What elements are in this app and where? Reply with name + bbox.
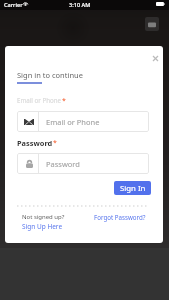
staticText: * [62,96,66,106]
button[interactable]: Close [149,52,162,65]
button[interactable]: Not signed up? [22,213,65,231]
staticText: Not signed up? [22,213,65,221]
staticText: Password [17,138,53,148]
button[interactable]: Sign In [114,181,151,195]
staticText: 3:10 AM [69,1,91,9]
button[interactable]: Email or Phone [17,111,149,132]
staticText: * [53,138,57,148]
button[interactable]: Forgot Password? [94,213,146,221]
staticText: Email or Phone [17,96,62,104]
staticText: Sign In [120,183,146,194]
staticText: Email or Phone [46,117,100,127]
staticText: Password [46,159,80,169]
staticText: Forgot Password? [94,213,146,221]
staticText: Sign in to continue [17,70,83,80]
button[interactable]: Settings [145,17,159,31]
staticText: Carrier [4,1,23,9]
staticText: Sign Up Here [22,222,63,231]
button[interactable]: Password [17,153,149,174]
